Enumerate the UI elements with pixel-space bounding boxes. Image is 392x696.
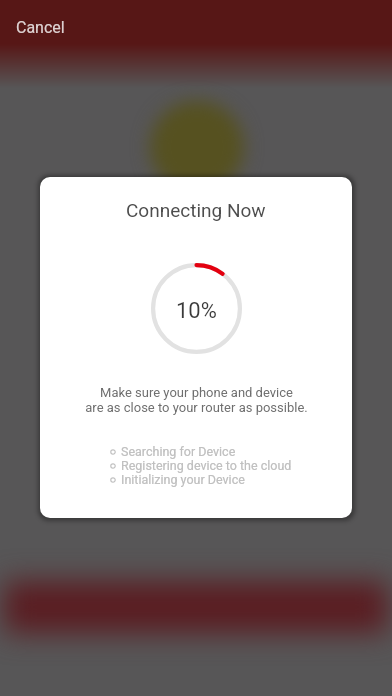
button[interactable]: Initializing your Device — [110, 472, 245, 487]
staticText: Make sure your phone and device are as c… — [85, 385, 308, 415]
button[interactable]: Cancel — [10, 13, 71, 42]
button[interactable]: Searching for Device — [110, 444, 236, 459]
staticText: Cancel — [16, 18, 65, 37]
staticText: Searching for Device — [121, 444, 236, 459]
button[interactable]: Registering device to the cloud — [110, 458, 292, 473]
staticText: Registering device to the cloud — [121, 458, 292, 473]
staticText: 10% — [176, 298, 217, 324]
staticText: Initializing your Device — [121, 472, 245, 487]
staticText: Connecting Now — [126, 199, 266, 221]
